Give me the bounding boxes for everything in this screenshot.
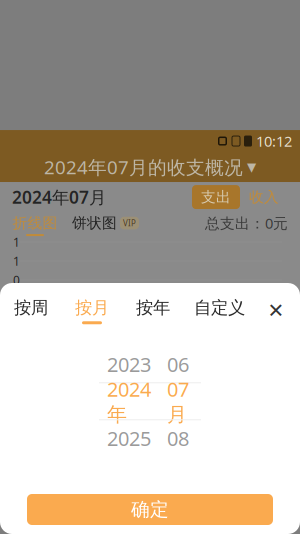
staticText: 收入	[249, 188, 279, 206]
staticText: 1	[13, 234, 20, 250]
staticText: 饼状图	[72, 214, 117, 232]
staticText: 10:12	[256, 131, 292, 151]
button[interactable]: 确定	[27, 494, 273, 525]
staticText: 07-23	[188, 380, 220, 396]
staticText: 支出	[201, 188, 231, 206]
staticText: 自定义	[194, 297, 245, 318]
staticText: 2024年	[107, 376, 151, 427]
button[interactable]: 按年	[136, 297, 170, 324]
staticText: 0	[13, 310, 20, 326]
staticText: 2024年07月的收支概况	[44, 155, 243, 179]
staticText: 按年	[136, 297, 170, 318]
button[interactable]: 按周	[14, 297, 48, 324]
button[interactable]: Close	[264, 299, 288, 323]
button[interactable]: 按月	[75, 297, 109, 324]
staticText: 2023	[107, 351, 151, 378]
staticText: ✕	[267, 299, 284, 322]
button[interactable]: 收入	[240, 185, 288, 209]
staticText: 07-16	[132, 380, 164, 396]
staticText: 按周	[14, 297, 48, 318]
button[interactable]: 饼状图	[72, 214, 139, 236]
staticText: VIP	[123, 218, 136, 228]
staticText: 0	[13, 291, 20, 307]
staticText: 0	[13, 272, 20, 288]
button[interactable]: 2024年07月的收支概况	[0, 152, 300, 182]
staticText: 07月	[167, 376, 189, 427]
staticText: 按月	[75, 297, 109, 318]
staticText: 折线图	[12, 214, 57, 232]
staticText: 2025	[107, 425, 151, 452]
staticText: 06	[167, 351, 189, 378]
staticText: 1	[13, 253, 20, 269]
staticText: 08	[167, 425, 189, 452]
button[interactable]: 折线图	[12, 214, 58, 236]
staticText: 2024年07月	[12, 186, 106, 209]
button[interactable]: 自定义	[194, 297, 245, 324]
staticText: 确定	[131, 498, 169, 521]
staticText: 总支出：0元	[205, 213, 288, 233]
staticText: 07-08	[77, 380, 109, 396]
staticText: ▼	[247, 160, 256, 174]
button[interactable]: 支出	[192, 185, 240, 209]
